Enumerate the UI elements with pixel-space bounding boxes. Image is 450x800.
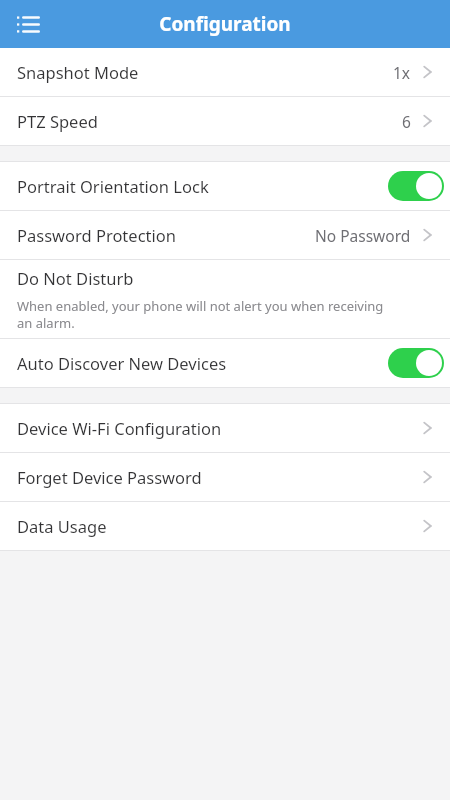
staticText: 6 [402,111,411,132]
staticText: 1x [393,62,411,83]
button[interactable]: Forget Device Password [0,453,450,501]
staticText: Device Wi-Fi Configuration [17,417,418,439]
staticText: Data Usage [17,515,418,537]
staticText: PTZ Speed [17,110,402,132]
staticText: Configuration [159,11,291,37]
button[interactable]: Device Wi-Fi Configuration [0,404,450,452]
staticText: No Password [315,225,411,246]
button[interactable]: Portrait Orientation Lock [0,162,450,210]
button[interactable]: Menu [10,6,46,42]
button[interactable]: PTZ Speed [0,97,450,145]
staticText: When enabled, your phone will not alert … [17,297,388,332]
staticText: Password Protection [17,224,315,246]
staticText: Auto Discover New Devices [17,352,388,374]
button[interactable]: Toggle on [388,348,444,378]
button[interactable]: Toggle on [388,171,444,201]
button[interactable]: Password Protection [0,211,450,259]
button[interactable]: Data Usage [0,502,450,550]
button[interactable]: Do Not Disturb [0,260,450,338]
staticText: Forget Device Password [17,466,418,488]
button[interactable]: Snapshot Mode [0,48,450,96]
staticText: Portrait Orientation Lock [17,175,388,197]
staticText: Snapshot Mode [17,61,393,83]
staticText: Do Not Disturb [17,267,134,289]
button[interactable]: Auto Discover New Devices [0,339,450,387]
